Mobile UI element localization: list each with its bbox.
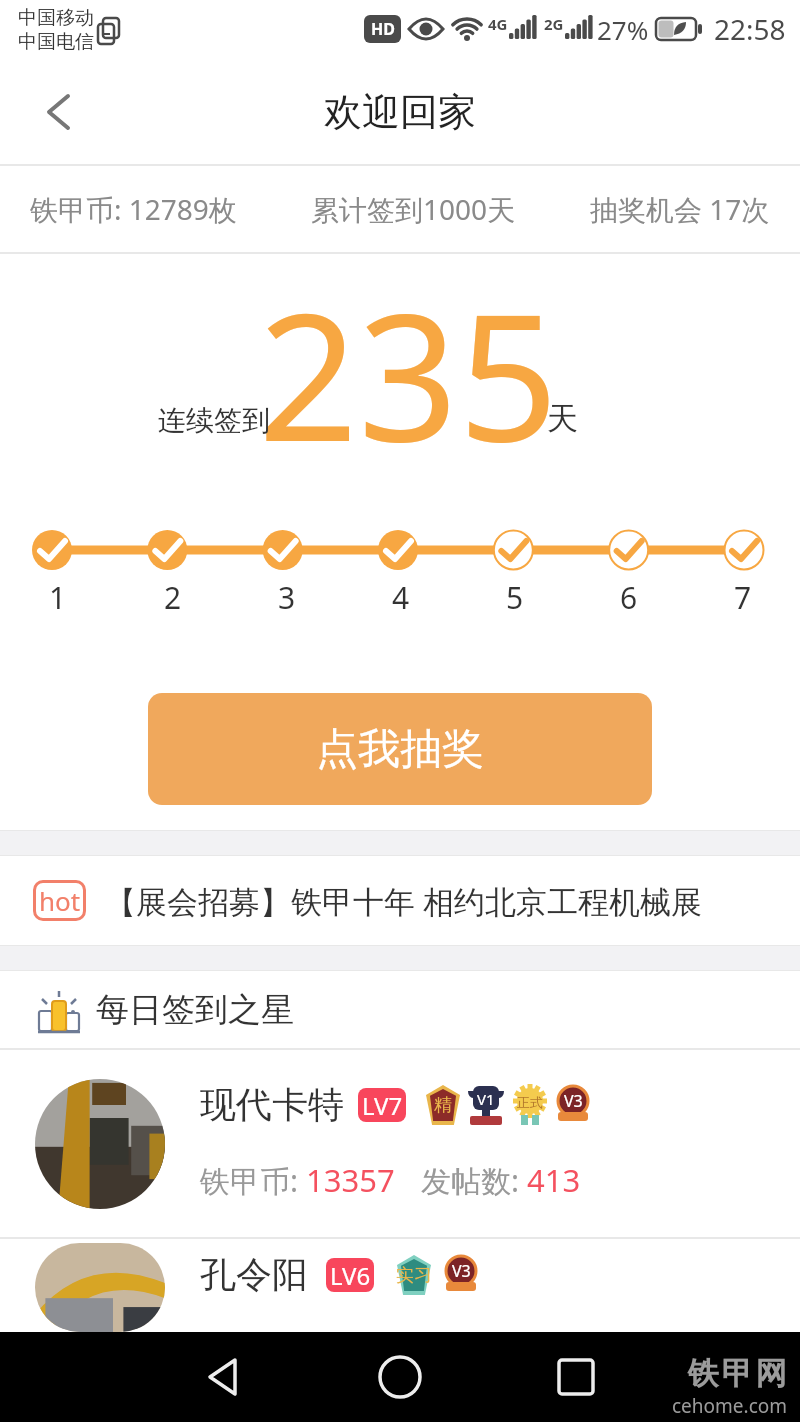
staticText: 累计签到1000天 xyxy=(311,190,516,228)
staticText: 铁甲币: 12789枚 xyxy=(30,190,237,228)
staticText: 4 xyxy=(392,577,410,618)
staticText: HD xyxy=(371,18,395,40)
staticText: 现代卡特 xyxy=(200,1082,344,1127)
button[interactable] xyxy=(196,1351,248,1403)
staticText: 发帖数: xyxy=(421,1160,527,1201)
staticText: 5 xyxy=(506,577,524,618)
staticText: 2 xyxy=(164,577,182,618)
staticText: cehome.com xyxy=(672,1393,788,1419)
button[interactable]: hot xyxy=(33,856,800,945)
staticText: 4G xyxy=(488,14,508,34)
staticText: 中国移动 xyxy=(18,6,94,30)
staticText: 实习 xyxy=(396,1264,432,1287)
staticText: 铁甲网 xyxy=(686,1354,788,1393)
staticText: 连续签到 xyxy=(158,403,270,438)
staticText: V3 xyxy=(564,1090,583,1112)
button[interactable]: 点我抽奖 xyxy=(148,693,652,805)
staticText: 精 xyxy=(434,1094,452,1117)
staticText: V3 xyxy=(452,1260,471,1282)
staticText: 3 xyxy=(278,577,296,618)
staticText: 【展会招募】铁甲十年 相约北京工程机械展 xyxy=(105,880,703,922)
button[interactable] xyxy=(374,1351,426,1403)
staticText: LV6 xyxy=(330,1259,371,1292)
staticText: 孔令阳 xyxy=(200,1252,308,1297)
staticText: 正式 xyxy=(517,1094,543,1110)
staticText: 每日签到之星 xyxy=(96,989,294,1031)
staticText: 7 xyxy=(734,577,752,618)
staticText: 天 xyxy=(547,399,578,438)
staticText: 中国电信 xyxy=(18,30,94,54)
button[interactable]: 孔令阳 xyxy=(0,1239,800,1332)
staticText: 铁甲币: xyxy=(200,1160,306,1201)
button[interactable]: 现代卡特 xyxy=(0,1050,800,1237)
staticText: 27% xyxy=(597,12,649,47)
staticText: 13357 xyxy=(306,1159,395,1201)
staticText: 22:58 xyxy=(714,10,786,48)
staticText: hot xyxy=(39,883,81,918)
staticText: 欢迎回家 xyxy=(324,88,476,136)
staticText: 1 xyxy=(49,577,67,618)
staticText: LV7 xyxy=(362,1089,403,1122)
button[interactable] xyxy=(30,84,86,140)
staticText: 点我抽奖 xyxy=(316,723,484,776)
staticText: V1 xyxy=(477,1089,495,1109)
staticText: 2G xyxy=(544,14,564,34)
staticText: 235 xyxy=(258,254,559,470)
staticText: 413 xyxy=(527,1159,581,1201)
staticText: 6 xyxy=(620,577,638,618)
button[interactable] xyxy=(550,1351,602,1403)
staticText: 抽奖机会 17次 xyxy=(590,190,770,228)
